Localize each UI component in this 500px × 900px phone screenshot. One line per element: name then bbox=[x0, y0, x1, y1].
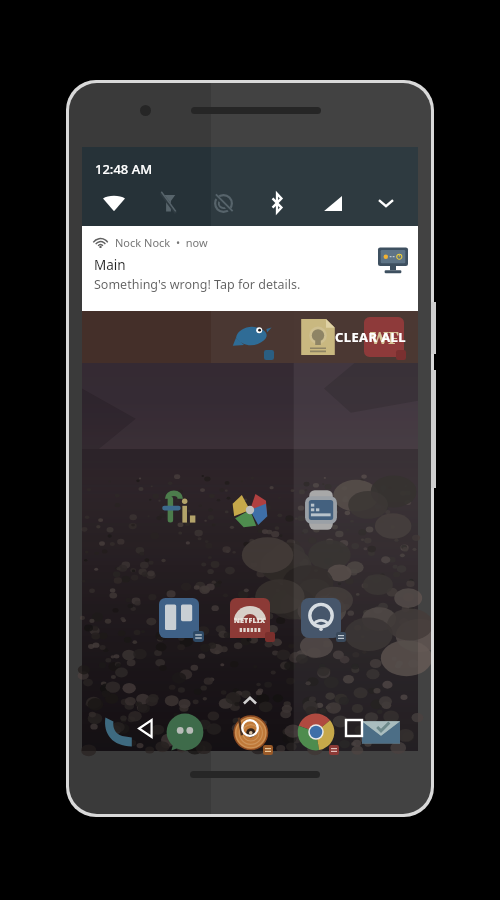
button[interactable]: Expand bbox=[366, 189, 406, 217]
button[interactable]: Nock Nock • now bbox=[82, 226, 418, 311]
button[interactable]: Netflix bbox=[227, 595, 273, 641]
button[interactable]: Flashlight bbox=[148, 189, 188, 217]
staticText: 12:48 AM bbox=[95, 160, 153, 178]
button[interactable]: Email bbox=[358, 709, 404, 755]
button[interactable]: Messages bbox=[162, 709, 208, 755]
button[interactable]: Mobile data bbox=[312, 189, 352, 217]
button[interactable]: Google Photos bbox=[227, 487, 273, 533]
button[interactable]: Auto rotate bbox=[203, 189, 243, 217]
staticText: Nock Nock • now bbox=[115, 235, 208, 250]
staticText: NETFLIX bbox=[234, 616, 266, 626]
button[interactable]: Open app drawer bbox=[236, 687, 264, 715]
staticText: WF bbox=[370, 326, 399, 349]
button[interactable]: Music bbox=[227, 709, 273, 755]
button[interactable]: Trello bbox=[156, 595, 202, 641]
button[interactable]: Bluetooth bbox=[257, 189, 297, 217]
button[interactable]: Wear bbox=[298, 487, 344, 533]
staticText: Something's wrong! Tap for details. bbox=[94, 276, 301, 293]
button[interactable]: Chrome bbox=[293, 709, 339, 755]
button[interactable]: Wi-Fi bbox=[94, 189, 134, 217]
staticText: Main bbox=[94, 256, 126, 274]
button[interactable]: Back bbox=[106, 705, 186, 751]
button[interactable]: Recents bbox=[314, 705, 394, 751]
button[interactable]: Google Fi bbox=[156, 487, 202, 533]
button[interactable]: CLEAR ALL bbox=[327, 320, 414, 354]
button[interactable]: Phone bbox=[96, 709, 142, 755]
staticText: CLEAR ALL bbox=[335, 328, 406, 346]
button[interactable]: Google Home bbox=[298, 595, 344, 641]
button[interactable]: Home bbox=[210, 705, 290, 751]
